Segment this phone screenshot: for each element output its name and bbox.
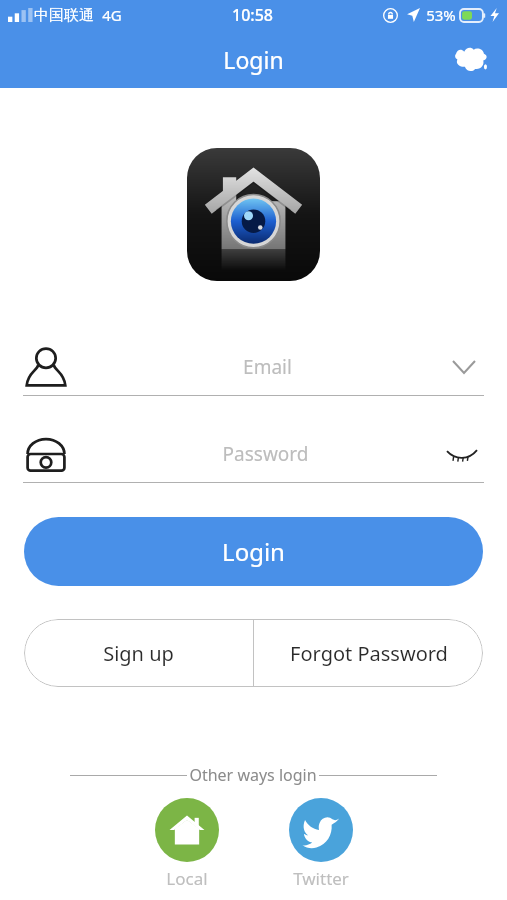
staticText: 中国联通 [34,6,94,25]
staticText: Email [91,354,444,380]
staticText: Login [223,44,284,75]
button[interactable]: Twitter [285,798,357,890]
button[interactable]: Sign up [24,619,253,687]
staticText: Other ways login [189,764,317,786]
staticText: 53% [426,5,456,25]
button[interactable]: Forgot Password [254,619,483,687]
button[interactable]: Local [151,798,223,890]
staticText: Password [91,441,440,467]
button[interactable]: Login [24,517,483,586]
staticText: 10:58 [232,4,273,26]
button[interactable]: Email [23,339,484,395]
staticText: 4G [102,5,122,25]
staticText: Forgot Password [290,640,448,667]
staticText: Local [166,867,208,890]
button[interactable]: Password [23,426,484,482]
button[interactable]: Select region [449,37,493,81]
button[interactable]: Show saved accounts [444,347,484,387]
button[interactable]: Show password [440,432,484,476]
staticText: Login [222,535,285,568]
staticText: Sign up [103,640,174,667]
staticText: Twitter [293,867,349,890]
